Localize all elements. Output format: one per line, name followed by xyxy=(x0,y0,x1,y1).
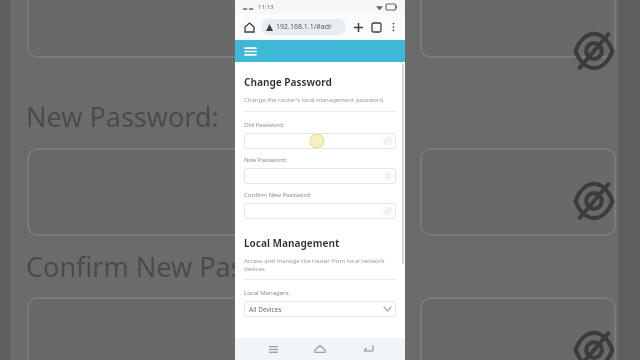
button[interactable]: Home xyxy=(310,339,330,359)
button[interactable]: Show password xyxy=(244,203,396,219)
button[interactable]: Show password xyxy=(244,168,396,184)
staticText: Change the router's local management pas… xyxy=(244,96,385,104)
staticText: Confirm New Passw xyxy=(26,248,278,285)
staticText: Confirm New Password: xyxy=(244,191,312,199)
button[interactable]: More options xyxy=(387,21,399,33)
staticText: Local Managers: xyxy=(244,289,291,297)
staticText: 192.168.1.1/#adr xyxy=(276,22,332,32)
staticText: All Devices xyxy=(249,305,282,314)
button[interactable]: All Devices xyxy=(244,301,396,317)
staticText: New Password: xyxy=(26,98,219,135)
button[interactable]: 192.168.1.1/#adr xyxy=(261,19,346,35)
button[interactable]: Back xyxy=(358,339,378,359)
button[interactable]: Recent apps xyxy=(263,339,283,359)
staticText: Change Password xyxy=(244,75,332,89)
button[interactable]: Tabs xyxy=(369,20,383,34)
staticText: New Password: xyxy=(244,156,287,164)
staticText: Access and manage the router from local … xyxy=(244,257,396,273)
button[interactable]: Show password xyxy=(383,136,393,146)
button[interactable]: Show password xyxy=(383,171,393,181)
staticText: Old Password: xyxy=(244,121,285,129)
staticText: Local Management xyxy=(244,236,340,250)
button[interactable]: New tab xyxy=(351,20,365,34)
staticText: 11:13 xyxy=(258,3,274,11)
button[interactable]: Show password xyxy=(383,206,393,216)
button[interactable]: Home xyxy=(241,19,257,35)
button[interactable]: Show password xyxy=(244,133,396,149)
button[interactable]: Menu xyxy=(241,42,259,60)
